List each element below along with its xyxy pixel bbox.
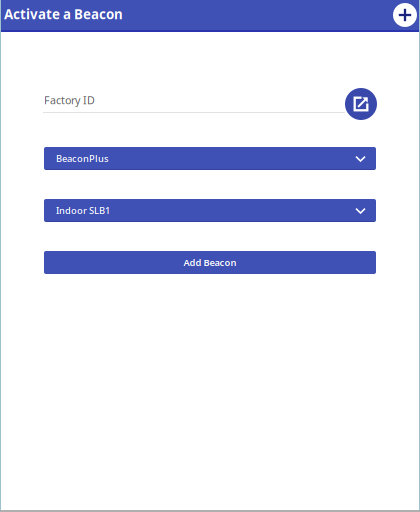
staticText: Add Beacon <box>183 256 236 269</box>
button[interactable]: Scan factory ID <box>345 88 377 120</box>
button[interactable]: Add Beacon <box>44 251 376 274</box>
staticText: Activate a Beacon <box>4 5 123 23</box>
staticText: BeaconPlus <box>56 152 109 165</box>
button[interactable]: BeaconPlus <box>44 147 376 170</box>
staticText: Factory ID <box>44 93 95 107</box>
button[interactable]: Indoor SLB1 <box>44 199 376 222</box>
staticText: Indoor SLB1 <box>56 204 110 217</box>
button[interactable]: Add beacon <box>393 3 417 27</box>
